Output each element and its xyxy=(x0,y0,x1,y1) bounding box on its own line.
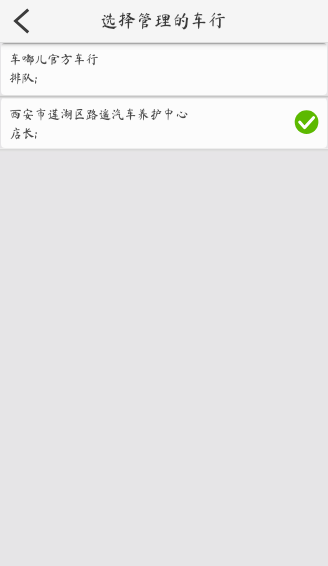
staticText: 西安市莲湖区路遥汽车养护中心 xyxy=(9,108,189,121)
button[interactable]: Back xyxy=(0,0,43,43)
button[interactable]: 西安市莲湖区路遥汽车养护中心 xyxy=(1,98,327,148)
other: Selected xyxy=(293,106,327,140)
staticText: 选择管理的车行 xyxy=(100,11,226,29)
staticText: 店长; xyxy=(9,127,38,140)
button[interactable]: 车嘟儿官方车行 xyxy=(1,43,327,95)
staticText: 排队; xyxy=(9,72,38,85)
staticText: 车嘟儿官方车行 xyxy=(9,53,99,66)
